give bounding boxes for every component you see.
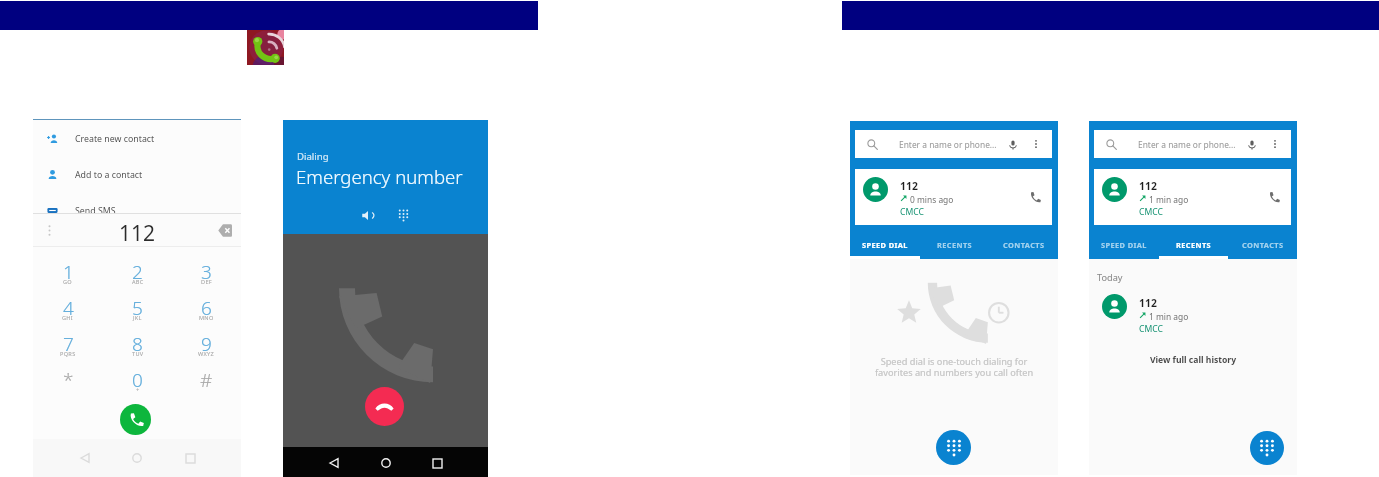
staticText: CONTACTS <box>1242 240 1284 250</box>
button[interactable]: 1 <box>33 259 103 295</box>
staticText: + <box>136 386 140 394</box>
button[interactable]: More options <box>1269 138 1281 150</box>
button[interactable]: 8 <box>103 331 172 367</box>
staticText: 7 <box>63 331 74 357</box>
staticText: CONTACTS <box>1003 240 1045 250</box>
staticText: 112 <box>1139 179 1157 193</box>
staticText: Add to a contact <box>75 169 143 181</box>
staticText: CMCC <box>1139 323 1163 335</box>
staticText: Enter a name or phone... <box>899 139 997 150</box>
staticText: Create new contact <box>75 133 155 145</box>
button[interactable]: Phone app <box>247 30 284 65</box>
staticText: 112 <box>33 219 241 248</box>
staticText: DEF <box>201 278 212 286</box>
button[interactable]: CONTACTS <box>989 235 1058 259</box>
staticText: 3 <box>201 259 212 285</box>
button[interactable]: 3 <box>172 259 241 295</box>
staticText: 112 <box>1139 296 1157 310</box>
staticText: Emergency number <box>296 164 463 189</box>
button[interactable]: Backspace <box>211 217 238 244</box>
staticText: 112 <box>900 179 918 193</box>
staticText: Send SMS <box>75 205 116 217</box>
staticText: JKL <box>133 314 142 322</box>
button[interactable]: * <box>33 367 103 403</box>
button[interactable]: Speaker <box>359 206 377 224</box>
button[interactable]: Home <box>126 447 148 469</box>
staticText: 1 min ago <box>1149 194 1189 205</box>
button[interactable]: Back <box>323 452 345 474</box>
button[interactable]: 112 <box>855 169 1052 225</box>
staticText: ABC <box>132 278 144 286</box>
button[interactable]: 7 <box>33 331 103 367</box>
staticText: 1 min ago <box>1149 311 1189 322</box>
staticText: RECENTS <box>1176 240 1212 250</box>
staticText: GHI <box>62 314 74 322</box>
button[interactable]: Open dialpad <box>936 430 971 465</box>
staticText: MNO <box>199 314 214 322</box>
button[interactable]: Home <box>375 452 397 474</box>
button[interactable]: Send SMS <box>33 199 241 222</box>
staticText: WXYZ <box>198 350 215 358</box>
button[interactable]: Call <box>1024 186 1046 208</box>
staticText: 0 <box>132 367 143 393</box>
staticText: * <box>63 367 74 393</box>
staticText: 6 <box>201 295 212 321</box>
button[interactable]: Dialpad <box>394 206 412 224</box>
button[interactable]: 112 <box>1094 169 1291 225</box>
button[interactable]: 2 <box>103 259 172 295</box>
button[interactable]: Add to a contact <box>33 163 241 186</box>
staticText: Speed dial is one-touch dialing for favo… <box>850 355 1058 379</box>
staticText: CMCC <box>1139 206 1163 218</box>
button[interactable]: 4 <box>33 295 103 331</box>
staticText: CMCC <box>900 206 924 218</box>
button[interactable]: Voice search <box>1006 138 1019 151</box>
button[interactable]: Voice search <box>1245 138 1258 151</box>
button[interactable]: SPEED DIAL <box>1089 235 1159 259</box>
button[interactable]: 0 <box>103 367 172 403</box>
button[interactable]: CONTACTS <box>1228 235 1297 259</box>
button[interactable]: Enter a name or phone... <box>1094 130 1291 158</box>
button[interactable]: 5 <box>103 295 172 331</box>
button[interactable]: End call <box>365 387 404 426</box>
button[interactable]: # <box>172 367 241 403</box>
button[interactable]: Enter a name or phone... <box>855 130 1052 158</box>
staticText: PQRS <box>60 350 76 358</box>
button[interactable]: Call <box>120 404 151 435</box>
staticText: # <box>200 367 213 393</box>
staticText: 5 <box>132 295 143 321</box>
button[interactable]: Recents <box>179 447 201 469</box>
staticText: 0 mins ago <box>910 194 954 205</box>
staticText: Today <box>1097 271 1123 284</box>
staticText: 4 <box>63 295 74 321</box>
button[interactable]: Open dialpad <box>1250 431 1284 465</box>
staticText: TUV <box>132 350 144 358</box>
staticText: 2 <box>132 259 143 285</box>
staticText: GO <box>63 278 73 286</box>
staticText: 8 <box>132 331 143 357</box>
button[interactable]: 9 <box>172 331 241 367</box>
button[interactable]: SPEED DIAL <box>850 235 920 259</box>
staticText: Dialing <box>297 150 329 163</box>
staticText: 1 <box>63 259 74 285</box>
button[interactable]: Call <box>1263 186 1285 208</box>
staticText: SPEED DIAL <box>1101 240 1147 250</box>
button[interactable]: Back <box>74 447 96 469</box>
button[interactable]: Create new contact <box>33 127 241 150</box>
button[interactable]: View full call history <box>1089 354 1297 366</box>
staticText: RECENTS <box>937 240 973 250</box>
staticText: SPEED DIAL <box>862 240 908 250</box>
button[interactable]: 112 <box>1094 286 1302 342</box>
staticText: 9 <box>201 331 212 357</box>
button[interactable]: More options <box>42 223 57 238</box>
button[interactable]: Recents <box>426 452 448 474</box>
button[interactable]: RECENTS <box>920 235 989 259</box>
button[interactable]: 6 <box>172 295 241 331</box>
staticText: Enter a name or phone... <box>1138 139 1236 150</box>
button[interactable]: RECENTS <box>1159 235 1228 259</box>
button[interactable]: More options <box>1030 138 1042 150</box>
